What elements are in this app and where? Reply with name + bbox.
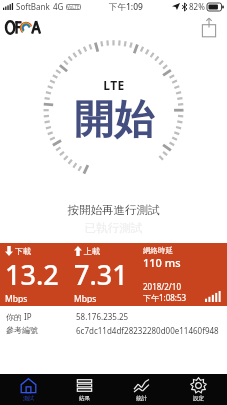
staticText: 7.31 bbox=[74, 256, 128, 293]
button[interactable]: 結果 bbox=[56, 374, 113, 405]
button[interactable]: 設定 bbox=[170, 374, 227, 405]
staticText: 上載 bbox=[84, 246, 100, 256]
staticText: Mbps bbox=[74, 293, 97, 303]
staticText: 2018/2/10 bbox=[143, 281, 181, 292]
staticText: 按開始再進行測試 bbox=[0, 203, 227, 217]
staticText: 結果 bbox=[79, 395, 90, 402]
button[interactable]: 開始測試 bbox=[0, 43, 227, 183]
staticText: 下午1:08:53 bbox=[143, 292, 187, 303]
staticText: LTE bbox=[103, 77, 125, 93]
staticText: 110 ms bbox=[143, 255, 181, 270]
button[interactable]: 統計 bbox=[113, 374, 170, 405]
staticText: 6c7dc11d4df28232280d00e11460f948 bbox=[76, 325, 219, 336]
staticText: 4G bbox=[53, 1, 64, 12]
staticText: 網絡時延 bbox=[143, 246, 173, 255]
button[interactable]: 下載 bbox=[5, 246, 222, 303]
staticText: 82% bbox=[189, 1, 205, 12]
staticText: 下載 bbox=[15, 246, 31, 256]
staticText: 下午1:09 bbox=[109, 1, 143, 13]
staticText: 統計 bbox=[136, 395, 147, 402]
staticText: Mbps bbox=[5, 293, 28, 303]
button[interactable]: Share bbox=[198, 17, 220, 39]
button[interactable]: 測試 bbox=[0, 374, 56, 405]
staticText: 13.2 bbox=[5, 256, 59, 293]
staticText: 參考編號 bbox=[6, 325, 76, 335]
staticText: 開始 bbox=[74, 94, 154, 144]
staticText: 已執行測試 bbox=[0, 221, 227, 235]
staticText: 測試 bbox=[23, 395, 34, 402]
staticText: 58.176.235.25 bbox=[76, 311, 129, 322]
staticText: 你的 IP bbox=[6, 311, 76, 322]
staticText: SoftBank bbox=[16, 1, 50, 12]
staticText: VoLTE bbox=[67, 4, 80, 10]
staticText: 設定 bbox=[193, 395, 204, 402]
